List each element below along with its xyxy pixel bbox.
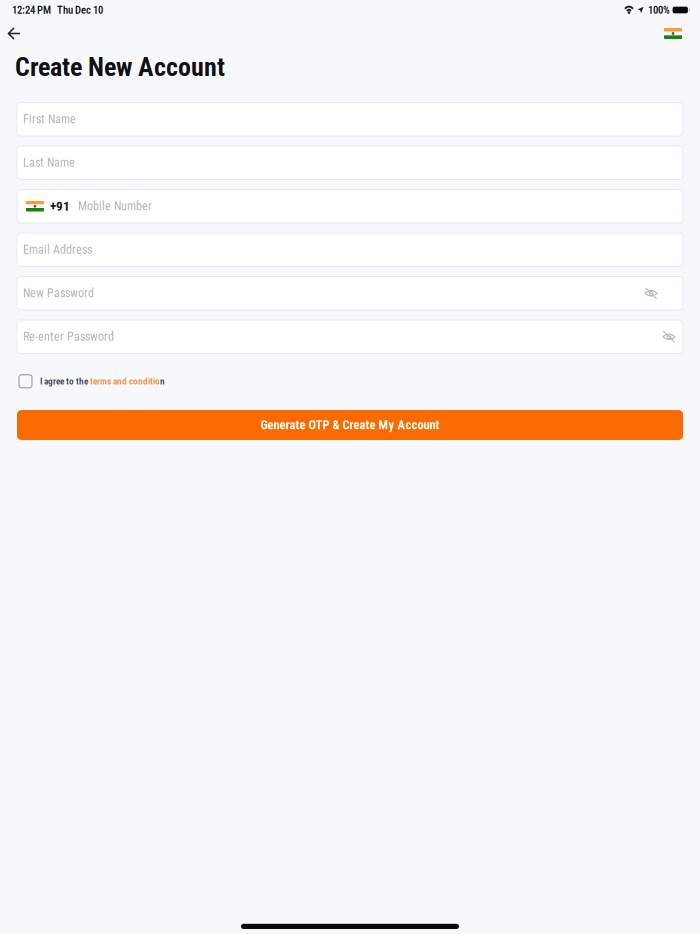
staticText: Thu Dec 10 [57, 4, 103, 16]
staticText: New Password [23, 286, 94, 300]
staticText: Last Name [23, 156, 75, 170]
button[interactable]: Last Name [17, 146, 683, 179]
staticText: 100% [648, 4, 670, 16]
button[interactable]: Back [0, 21, 28, 45]
button[interactable]: Select country [656, 21, 700, 45]
button[interactable]: First Name [17, 102, 683, 136]
staticText: Create New Account [15, 52, 225, 82]
staticText: First Name [23, 112, 76, 126]
button[interactable]: Generate OTP & Create My Account [17, 410, 683, 440]
staticText: +91 [50, 198, 70, 214]
button[interactable]: New Password [17, 276, 683, 310]
button[interactable]: I agree to the terms and condition [19, 374, 90, 388]
staticText: terms and conditio [90, 376, 160, 387]
button[interactable]: +91 [17, 189, 683, 223]
staticText: Email Address [23, 243, 92, 257]
staticText: Generate OTP & Create My Account [260, 418, 439, 432]
staticText: n [160, 376, 165, 387]
button[interactable]: terms and conditio [90, 374, 165, 388]
staticText: 12:24 PM [12, 4, 51, 16]
staticText: Mobile Number [78, 199, 152, 213]
button[interactable]: Email Address [17, 233, 683, 266]
staticText: I agree to the [40, 376, 90, 387]
button[interactable]: Re-enter Password [17, 320, 683, 353]
staticText: Re-enter Password [23, 330, 114, 344]
